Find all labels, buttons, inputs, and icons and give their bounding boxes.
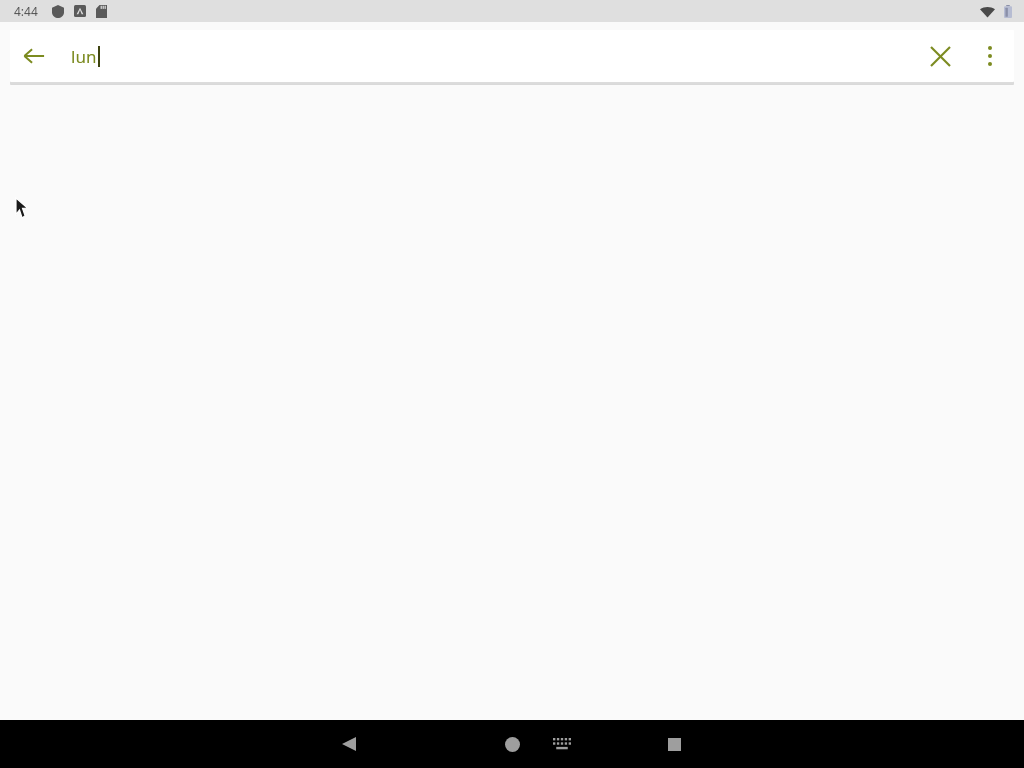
staticText: lun (71, 45, 97, 68)
button[interactable]: Recent apps (650, 720, 698, 768)
button[interactable]: Clear search (914, 30, 966, 82)
staticText: 4:44 (14, 3, 38, 19)
button[interactable]: Back (325, 720, 373, 768)
button[interactable]: More options (966, 32, 1014, 80)
button[interactable]: Navigate up (10, 32, 58, 80)
button[interactable]: lun (71, 30, 914, 82)
button[interactable]: Home (488, 720, 536, 768)
button[interactable]: Switch keyboard (538, 720, 586, 768)
